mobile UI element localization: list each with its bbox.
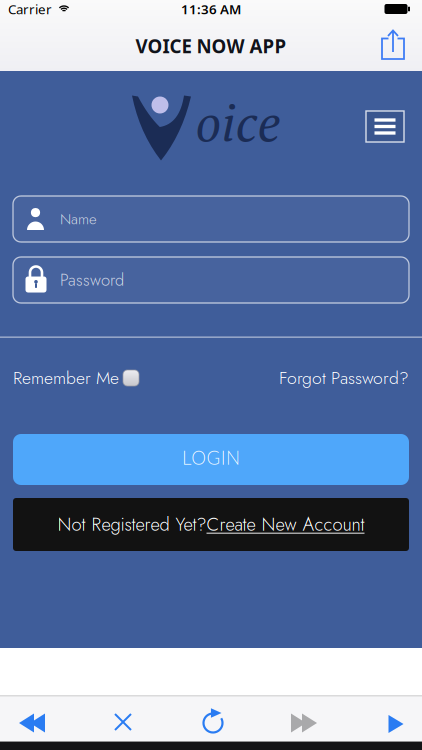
button[interactable]: Back [19, 713, 45, 732]
staticText: Password [60, 268, 124, 292]
staticText: 11:36 AM [181, 0, 241, 18]
staticText: Remember Me [13, 365, 119, 391]
button[interactable]: Forward [291, 713, 317, 732]
staticText: oice [195, 89, 280, 156]
button[interactable]: LOGIN [13, 434, 409, 485]
staticText: Not Registered Yet? [57, 511, 206, 538]
staticText: Name [60, 208, 97, 230]
button[interactable]: Stop [115, 714, 131, 730]
button[interactable]: Menu [366, 111, 404, 142]
button[interactable]: Name [13, 196, 409, 242]
button[interactable]: Not Registered Yet? [13, 498, 409, 551]
button[interactable]: Remember Me [13, 365, 139, 391]
button[interactable]: Play [388, 715, 403, 733]
staticText: Create New Account [206, 511, 364, 538]
staticText: VOICE NOW APP [135, 34, 286, 58]
button[interactable]: Share [381, 30, 405, 60]
staticText: Carrier [8, 0, 52, 18]
button[interactable]: Password [13, 257, 409, 303]
staticText: Forgot Password? [279, 365, 409, 391]
button[interactable]: Reload [203, 713, 222, 732]
button[interactable]: Forgot Password? [279, 365, 409, 391]
staticText: LOGIN [182, 446, 240, 469]
